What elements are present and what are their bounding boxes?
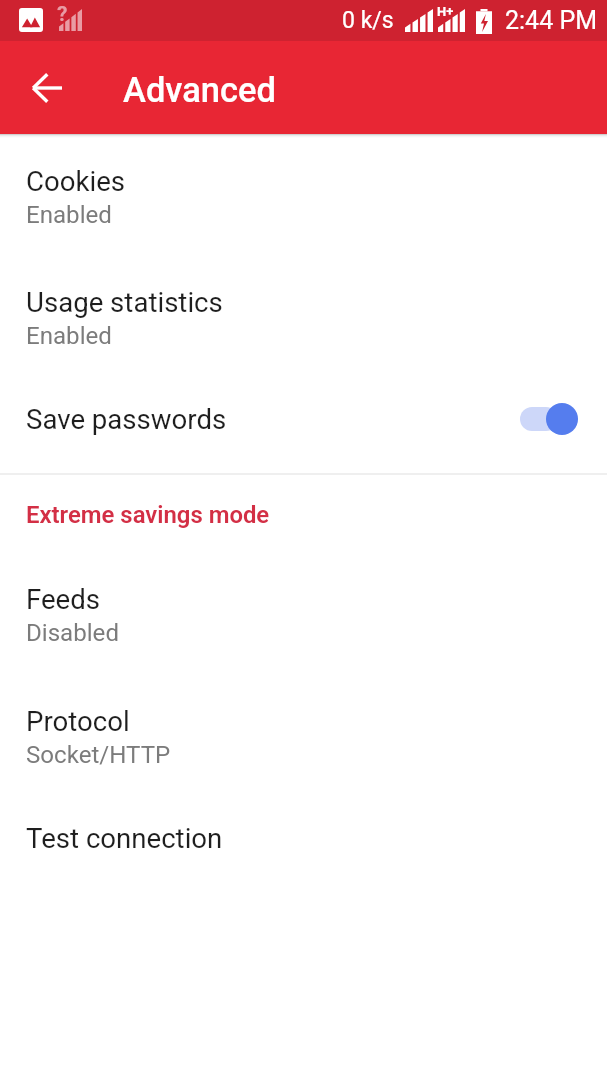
staticText: Usage statistics — [26, 286, 223, 318]
button[interactable]: Extreme savings mode — [0, 475, 607, 552]
button[interactable]: Save passwords toggle, on — [520, 402, 578, 436]
staticText: Extreme savings mode — [26, 501, 270, 529]
staticText: 0 k/s — [342, 7, 394, 34]
staticText: Advanced — [123, 70, 276, 110]
staticText: Enabled — [26, 322, 112, 350]
staticText: Enabled — [26, 201, 112, 229]
staticText: Disabled — [26, 619, 119, 647]
staticText: Protocol — [26, 705, 130, 737]
button[interactable]: Protocol — [0, 674, 607, 795]
staticText: Cookies — [26, 165, 126, 197]
button[interactable]: Usage statistics — [0, 255, 607, 376]
staticText: Save passwords — [26, 403, 227, 435]
staticText: Test connection — [26, 822, 223, 854]
button[interactable]: Back — [21, 62, 73, 114]
button[interactable]: Cookies — [0, 134, 607, 255]
staticText: 2:44 PM — [505, 6, 598, 35]
button[interactable]: Feeds — [0, 552, 607, 674]
button[interactable]: Test connection — [0, 795, 607, 895]
staticText: Socket/HTTP — [26, 741, 171, 769]
staticText: ? — [57, 2, 68, 24]
button[interactable]: Save passwords — [0, 376, 607, 473]
staticText: Feeds — [26, 583, 101, 615]
staticText: H+ — [437, 4, 454, 19]
